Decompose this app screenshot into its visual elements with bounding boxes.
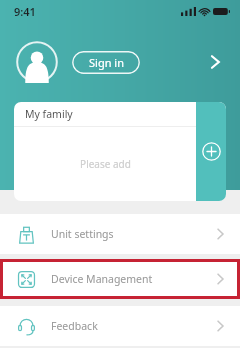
staticText: Unit settings	[51, 227, 114, 241]
staticText: Please add	[80, 157, 131, 171]
button[interactable]: Feedback	[0, 306, 240, 346]
staticText: 9:41	[14, 4, 36, 19]
button[interactable]: Add family member	[196, 102, 226, 201]
button[interactable]: Open profile	[198, 45, 232, 79]
button[interactable]: Sign in	[72, 51, 140, 74]
button[interactable]: Unit settings	[0, 214, 240, 254]
staticText: Device Management	[51, 272, 153, 286]
button[interactable]: Please add	[14, 127, 196, 201]
button[interactable]: Profile avatar	[16, 41, 58, 83]
staticText: My family	[25, 107, 73, 121]
button[interactable]: Device Management	[0, 259, 240, 299]
staticText: Feedback	[51, 319, 98, 333]
staticText: Sign in	[89, 55, 124, 70]
